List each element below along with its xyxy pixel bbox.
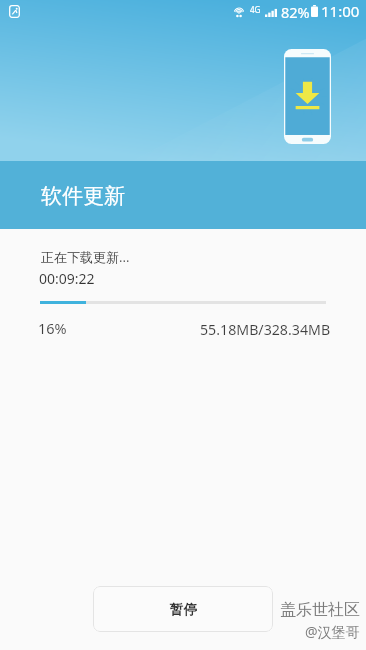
staticText: 55.18MB/328.34MB [200,320,331,339]
staticText: 11:00 [321,1,360,21]
button[interactable]: 暂停 Pause download [93,586,273,632]
staticText: @汉堡哥 [305,622,360,641]
staticText: 00:09:22 [39,269,95,288]
other: Mobile signal [265,9,277,17]
staticText: 正在下载更新... [41,248,130,266]
other: Software update illustration [284,49,331,144]
staticText: 16% [38,318,67,338]
other: Wi-Fi [234,6,244,17]
staticText: 暂停 [170,601,197,618]
staticText: 4G [250,4,261,15]
staticText: 82% [281,2,310,22]
staticText: 盖乐世社区 [280,600,360,620]
other: Notification [9,5,20,18]
other: Battery 82 percent [311,5,318,17]
staticText: 软件更新 [41,183,125,209]
